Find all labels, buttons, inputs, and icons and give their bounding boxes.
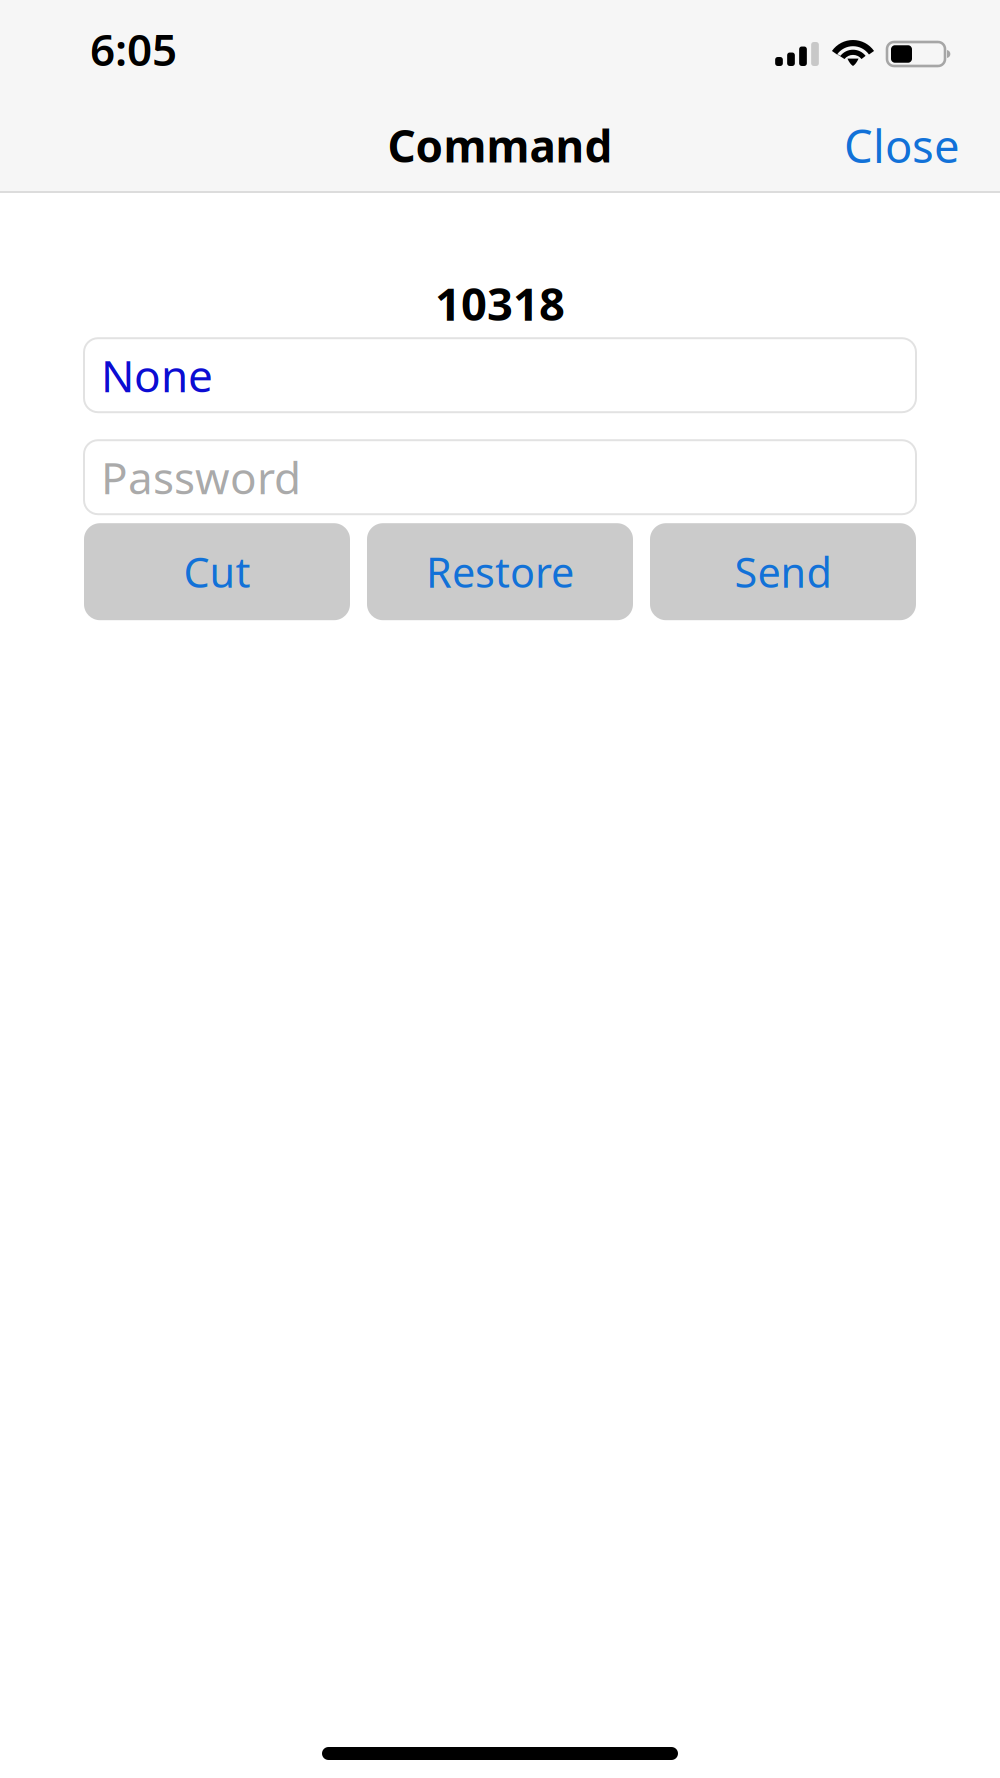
button[interactable]: None [84, 338, 916, 412]
staticText: 10318 [435, 273, 565, 333]
staticText: Password [101, 448, 301, 506]
button[interactable]: Restore [367, 523, 633, 620]
button[interactable]: Send [650, 523, 916, 620]
staticText: None [101, 346, 213, 404]
staticText: Cut [183, 544, 250, 599]
staticText: 6:05 [90, 20, 177, 78]
staticText: Send [734, 544, 831, 599]
button[interactable]: Password [84, 440, 916, 514]
staticText: Command [387, 116, 612, 175]
staticText: Close [844, 115, 960, 176]
button[interactable]: Close [844, 115, 960, 176]
staticText: Restore [426, 544, 574, 599]
button[interactable]: Cut [84, 523, 350, 620]
